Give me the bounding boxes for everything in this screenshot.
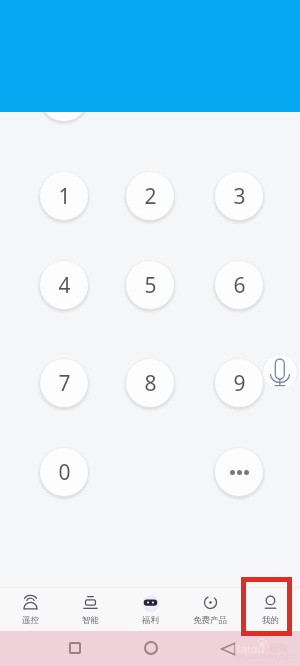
staticText: 0 xyxy=(58,458,71,487)
staticText: 6 xyxy=(233,271,246,300)
button[interactable]: 1 xyxy=(40,172,88,220)
staticText: 2 xyxy=(144,182,157,211)
staticText: 福利 xyxy=(142,615,159,626)
staticText: 遥控 xyxy=(22,615,39,626)
button[interactable]: 2 xyxy=(126,172,174,220)
staticText: 3 xyxy=(233,182,246,211)
button[interactable] xyxy=(215,448,263,496)
staticText: 免费产品 xyxy=(193,615,227,626)
staticText: 智能 xyxy=(82,615,99,626)
staticText: 5 xyxy=(144,271,157,300)
button[interactable]: 5 xyxy=(126,261,174,309)
button[interactable]: 遥控 xyxy=(0,587,60,626)
staticText: Baidu xyxy=(233,641,265,657)
staticText: 7 xyxy=(58,369,71,398)
button[interactable]: 6 xyxy=(215,261,263,309)
button[interactable]: 免费产品 xyxy=(180,587,240,626)
button[interactable]: 9 xyxy=(215,359,263,407)
button[interactable]: 8 xyxy=(126,359,174,407)
staticText: 我的 xyxy=(262,615,279,626)
staticText: 4 xyxy=(58,271,71,300)
button[interactable]: Back xyxy=(221,643,235,655)
button[interactable]: Home xyxy=(144,641,158,655)
button[interactable]: 我的 xyxy=(240,587,300,626)
button[interactable]: Recents xyxy=(69,642,81,654)
staticText: 1 xyxy=(58,182,71,211)
button[interactable]: 3 xyxy=(215,172,263,220)
button[interactable]: Voice input xyxy=(262,354,298,390)
button[interactable]: Key xyxy=(40,73,88,121)
staticText: 9 xyxy=(233,369,246,398)
button[interactable]: 福利 xyxy=(120,587,180,626)
staticText: 经验 xyxy=(270,642,288,653)
button[interactable]: 智能 xyxy=(60,587,120,626)
button[interactable]: 4 xyxy=(40,261,88,309)
button[interactable]: 7 xyxy=(40,359,88,407)
staticText: 8 xyxy=(144,369,157,398)
button[interactable]: 0 xyxy=(40,448,88,496)
